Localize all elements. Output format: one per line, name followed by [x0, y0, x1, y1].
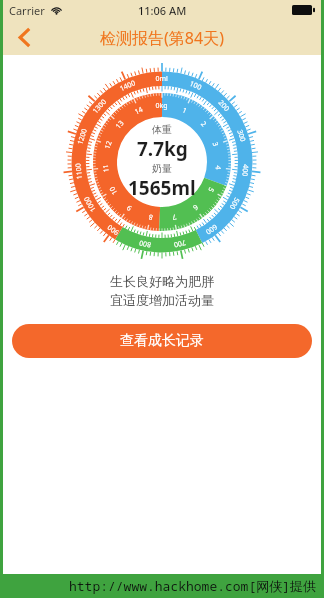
staticText: 生长良好略为肥胖	[110, 273, 214, 289]
button[interactable]: Back	[3, 20, 45, 55]
staticText: 查看成长记录	[120, 332, 204, 350]
staticText: 奶量	[152, 162, 172, 175]
staticText: 11:06 AM	[138, 3, 187, 18]
staticText: http://www.hackhome.com[网侠]提供	[69, 577, 317, 595]
staticText: 7.7kg	[137, 136, 188, 162]
staticText: 宜适度增加活动量	[110, 292, 214, 308]
button[interactable]: 查看成长记录	[12, 324, 312, 358]
staticText: 1565ml	[128, 175, 196, 201]
staticText: 体重	[152, 123, 172, 136]
staticText: 检测报告(第84天)	[100, 27, 224, 49]
staticText: Carrier	[9, 3, 45, 18]
